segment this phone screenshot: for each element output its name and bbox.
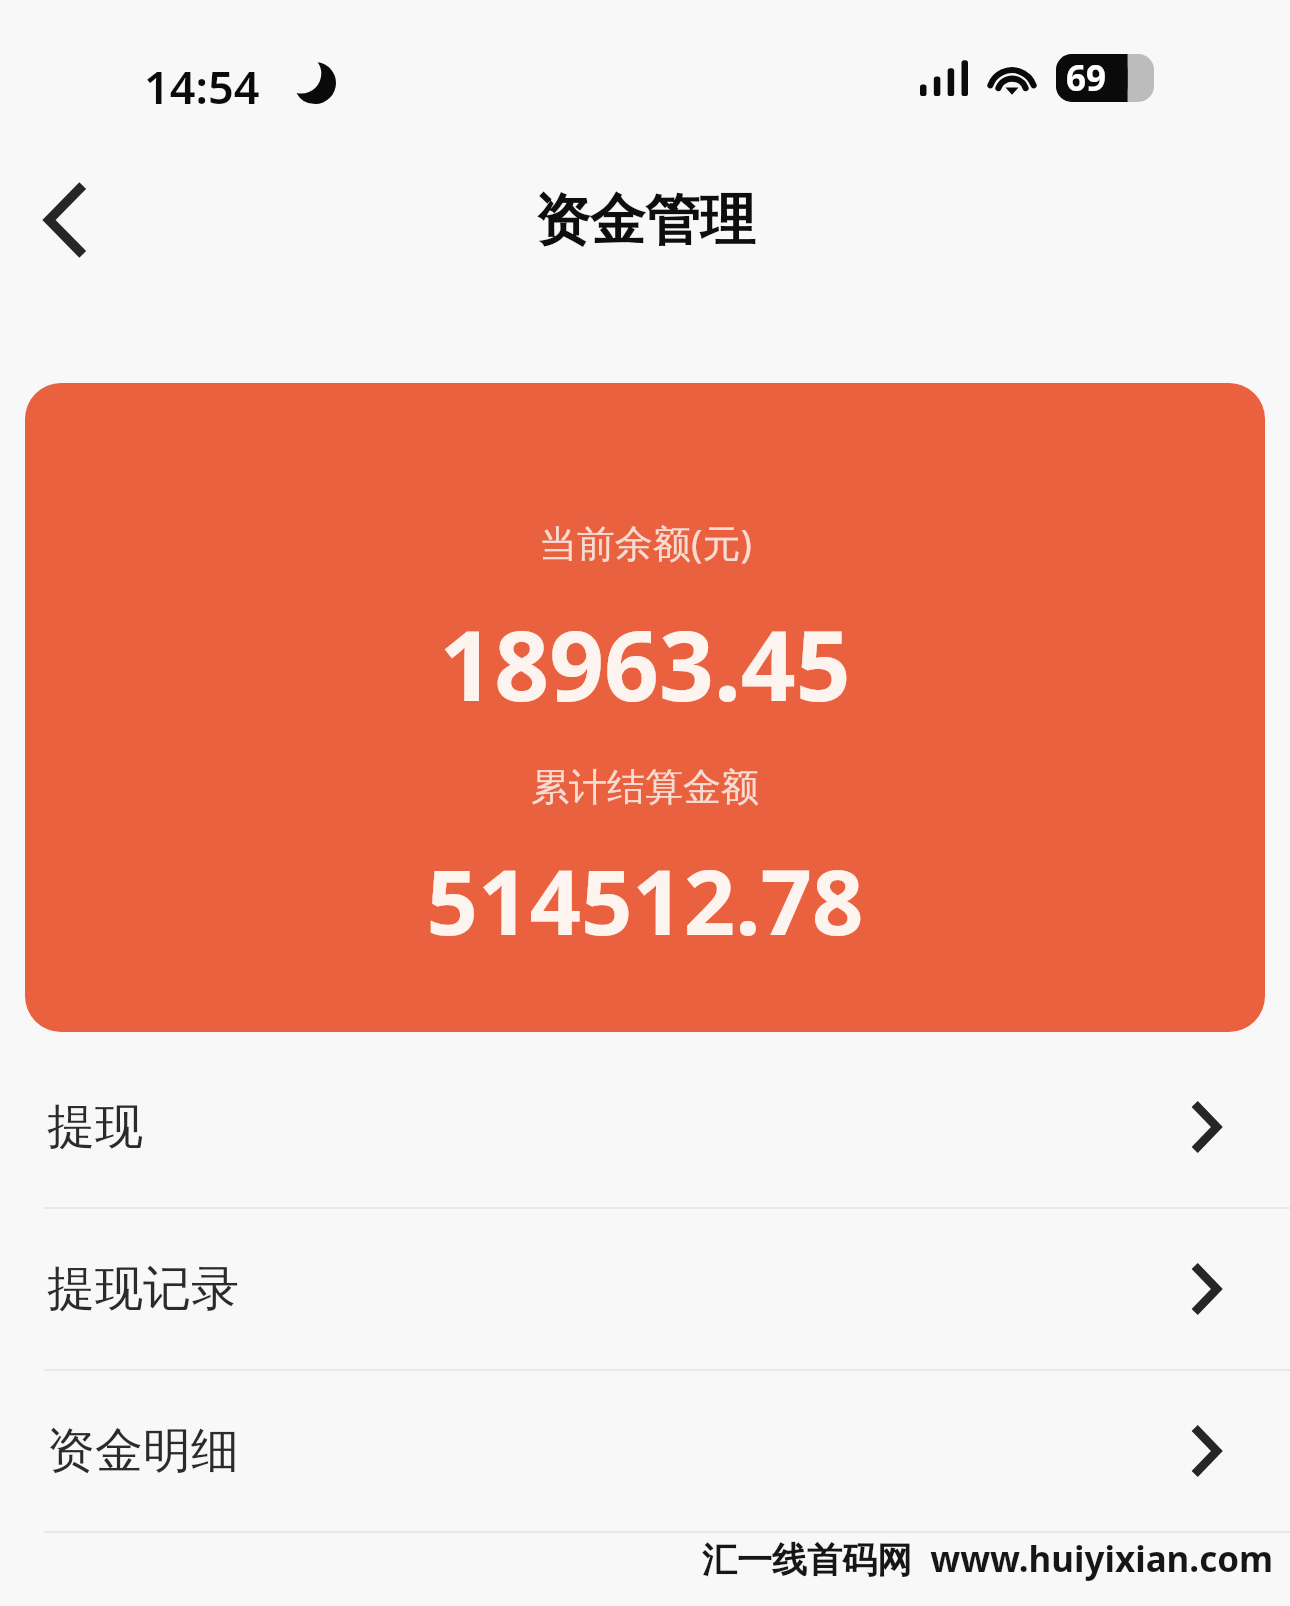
staticText: 提现 <box>47 1097 143 1157</box>
staticText: 累计结算金额 <box>531 763 759 811</box>
staticText: 汇一线首码网 www.huiyixian.com <box>702 1535 1274 1583</box>
staticText: 提现记录 <box>47 1259 239 1319</box>
staticText: 14:54 <box>144 56 260 117</box>
button[interactable]: 提现记录 <box>0 1209 1290 1369</box>
staticText: 514512.78 <box>426 839 864 962</box>
staticText: 资金管理 <box>535 186 755 255</box>
button[interactable]: Back <box>10 165 120 275</box>
staticText: 69 <box>1066 54 1107 102</box>
staticText: 当前余额(元) <box>539 516 752 568</box>
button[interactable]: 当前余额(元) <box>25 383 1265 1032</box>
staticText: 资金明细 <box>47 1421 239 1481</box>
button[interactable]: 提现 <box>0 1047 1290 1207</box>
button[interactable]: 资金明细 <box>0 1371 1290 1531</box>
staticText: 18963.45 <box>439 598 851 729</box>
